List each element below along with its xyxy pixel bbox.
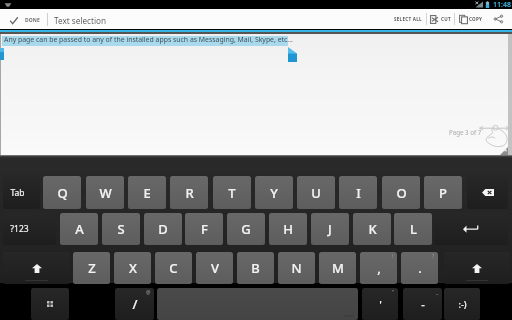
button[interactable]: P <box>424 176 462 209</box>
staticText: M <box>332 259 344 277</box>
staticText: A <box>75 220 84 238</box>
button[interactable]: Shift <box>444 252 510 284</box>
staticText: C <box>169 259 178 277</box>
button[interactable]: D <box>144 213 182 245</box>
staticText: B <box>251 259 260 277</box>
staticText: " <box>392 289 395 296</box>
button[interactable]: W <box>86 176 124 209</box>
staticText: / <box>132 295 138 313</box>
button[interactable]: L <box>394 213 432 245</box>
staticText: Q <box>57 184 68 202</box>
button[interactable]: J <box>311 213 349 245</box>
staticText: U <box>311 184 321 202</box>
button[interactable]: DONE <box>6 9 46 29</box>
staticText: D <box>158 220 168 238</box>
button[interactable]: :-) <box>444 288 480 320</box>
staticText: Page 3 of 7 <box>449 128 482 136</box>
staticText: - <box>421 297 425 312</box>
button[interactable]: CUT <box>428 9 453 29</box>
staticText: W <box>99 184 112 202</box>
button[interactable]: G <box>227 213 265 245</box>
staticText: V <box>211 259 219 277</box>
button[interactable]: S <box>102 213 140 245</box>
button[interactable]: F <box>185 213 223 245</box>
staticText: CUT <box>441 16 451 22</box>
button[interactable]: I <box>339 176 377 209</box>
button[interactable]: R <box>170 176 208 209</box>
staticText: S <box>117 220 125 238</box>
button[interactable]: Tab <box>3 176 40 209</box>
button[interactable]: Shift <box>3 252 70 284</box>
staticText: . <box>418 259 422 277</box>
staticText: R <box>185 184 194 202</box>
button[interactable]: Q <box>43 176 81 209</box>
button[interactable]: / <box>115 288 154 320</box>
button[interactable]: ' <box>362 288 398 320</box>
button[interactable]: Y <box>255 176 293 209</box>
staticText: @ <box>146 289 151 296</box>
button[interactable]: C <box>155 252 192 284</box>
staticText: P <box>439 184 447 202</box>
button[interactable]: H <box>269 213 307 245</box>
button[interactable]: N <box>278 252 315 284</box>
staticText: G <box>241 220 251 238</box>
staticText: :-) <box>458 298 467 310</box>
button[interactable]: - <box>403 288 442 320</box>
staticText: COPY <box>469 16 483 22</box>
button[interactable]: , <box>360 252 397 284</box>
button[interactable]: K <box>353 213 391 245</box>
button[interactable]: T <box>213 176 251 209</box>
staticText: SELECT ALL <box>394 16 422 22</box>
staticText: K <box>368 220 377 238</box>
button[interactable]: Input method <box>31 288 69 320</box>
staticText: E <box>143 184 151 202</box>
button[interactable]: B <box>237 252 274 284</box>
staticText: I <box>356 184 361 202</box>
staticText: DONE <box>25 17 40 24</box>
staticText: N <box>291 259 302 277</box>
staticText: O <box>396 184 407 202</box>
button[interactable]: M <box>319 252 356 284</box>
staticText: Tab <box>10 187 25 199</box>
button[interactable]: COPY <box>457 9 485 29</box>
button[interactable]: U <box>297 176 335 209</box>
staticText: , <box>377 259 381 277</box>
staticText: _ <box>436 289 439 296</box>
staticText: H <box>283 220 293 238</box>
staticText: ' <box>379 297 382 312</box>
staticText: Z <box>88 259 96 277</box>
button[interactable]: ?123 <box>3 213 56 245</box>
button[interactable]: V <box>196 252 233 284</box>
button[interactable]: O <box>382 176 420 209</box>
staticText: 11:48 <box>493 0 511 9</box>
button[interactable]: E <box>128 176 166 209</box>
staticText: ? <box>432 253 435 260</box>
button[interactable]: A <box>60 213 98 245</box>
button[interactable]: Backspace <box>467 176 508 209</box>
button[interactable]: Share <box>489 9 508 29</box>
staticText: F <box>201 220 208 238</box>
button[interactable]: . <box>401 252 438 284</box>
staticText: L <box>410 220 417 238</box>
button[interactable]: Z <box>73 252 110 284</box>
staticText: Y <box>270 184 278 202</box>
button[interactable]: Enter <box>434 213 508 245</box>
staticText: Any page can be passed to any of the ins… <box>4 35 293 44</box>
staticText: X <box>129 259 137 277</box>
staticText: T <box>228 184 236 202</box>
staticText: Text selection <box>54 15 107 26</box>
staticText: ! <box>392 253 394 260</box>
staticText: J <box>328 220 332 238</box>
button[interactable]: X <box>114 252 151 284</box>
button[interactable]: SELECT ALL <box>389 9 427 29</box>
staticText: ?123 <box>10 223 29 235</box>
